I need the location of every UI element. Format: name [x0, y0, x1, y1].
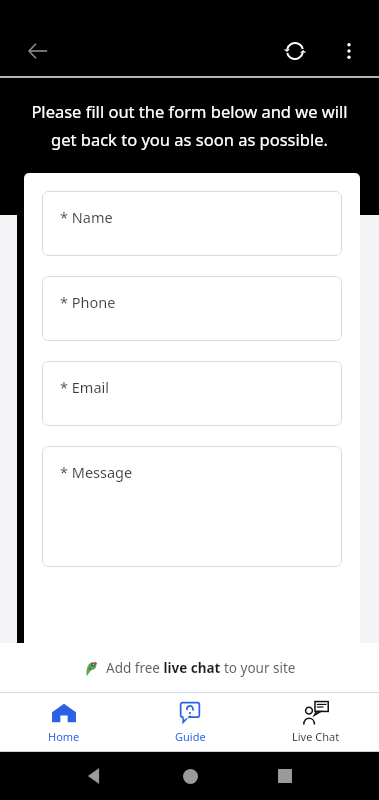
button[interactable]: System back [72, 754, 116, 798]
button[interactable]: * Name [42, 191, 342, 256]
button[interactable]: Refresh [271, 27, 319, 75]
staticText: Please fill out the form below and we wi… [18, 100, 361, 151]
button[interactable]: More options [325, 27, 373, 75]
button[interactable]: Back [14, 27, 62, 75]
staticText: Guide [175, 729, 206, 744]
staticText: Home [48, 729, 80, 744]
staticText: Add free live chat to your site [106, 659, 296, 677]
button[interactable]: * Email [42, 361, 342, 426]
staticText: Live Chat [292, 729, 340, 744]
button[interactable]: Add free live chat to your site [0, 643, 379, 692]
button[interactable]: Home [0, 693, 127, 751]
button[interactable]: Guide [127, 693, 253, 751]
button[interactable]: * Message [42, 446, 342, 567]
staticText: * Email [60, 377, 109, 397]
staticText: * Name [60, 207, 113, 227]
button[interactable]: * Phone [42, 276, 342, 341]
staticText: * Message [60, 462, 133, 482]
staticText: * Phone [60, 292, 116, 312]
button[interactable]: System home [168, 754, 212, 798]
button[interactable]: Recent apps [263, 754, 307, 798]
button[interactable]: Live Chat [253, 693, 379, 751]
